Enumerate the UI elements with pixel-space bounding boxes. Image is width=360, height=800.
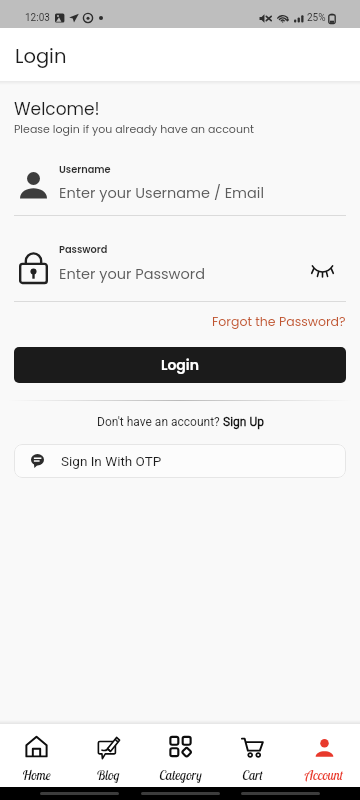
staticText: Don't have an account?	[97, 415, 223, 429]
button[interactable]: Cart	[216, 735, 288, 783]
staticText: Password	[59, 243, 108, 257]
staticText: Sign In With OTP	[61, 453, 162, 469]
staticText: Category	[159, 767, 202, 783]
staticText: Blog	[96, 767, 120, 783]
staticText: 25%	[307, 12, 326, 24]
staticText: Welcome!	[14, 97, 100, 121]
button[interactable]: Blog	[72, 735, 144, 783]
button[interactable]: Category	[144, 735, 216, 783]
staticText: Login	[161, 355, 199, 375]
button[interactable]: Sign Up	[223, 415, 264, 429]
staticText: 12:03	[25, 12, 50, 24]
staticText: Enter your Password	[59, 264, 205, 284]
button[interactable]: Home	[0, 735, 72, 783]
staticText: Enter your Username / Email	[59, 183, 264, 203]
staticText: Cart	[242, 767, 263, 783]
button[interactable]: Show password	[306, 253, 338, 285]
staticText: Username	[59, 163, 111, 177]
button[interactable]: Login	[14, 347, 346, 383]
button[interactable]: Sign In With OTP	[14, 444, 346, 478]
staticText: Login	[15, 43, 67, 70]
staticText: Home	[22, 767, 51, 783]
staticText: Account	[305, 767, 343, 783]
button[interactable]: Account	[288, 735, 360, 783]
button[interactable]: Forgot the Password?	[212, 313, 360, 330]
staticText: Please login if you already have an acco…	[14, 121, 254, 136]
